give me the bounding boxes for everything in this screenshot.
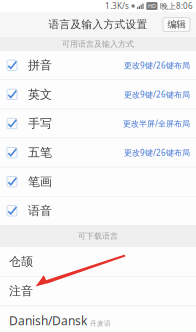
- button[interactable]: 编辑: [163, 17, 190, 31]
- button[interactable]: 仓颉: [0, 247, 196, 276]
- button[interactable]: 英文: [0, 80, 196, 109]
- button[interactable]: 手写: [0, 109, 196, 138]
- staticText: 注音: [9, 284, 33, 298]
- staticText: 拼音: [28, 58, 52, 73]
- button[interactable]: Danish/Dansk: [0, 306, 196, 332]
- staticText: 仓颉: [9, 254, 33, 269]
- staticText: 语言及输入方式设置: [48, 18, 147, 31]
- staticText: 更改9键/26键布局: [124, 147, 190, 158]
- button[interactable]: 拼音: [0, 51, 196, 80]
- staticText: 1.3K/s: [105, 1, 129, 11]
- staticText: 更改9键/26键布局: [124, 89, 190, 100]
- button[interactable]: 注音: [0, 277, 196, 306]
- staticText: 英文: [28, 87, 52, 102]
- staticText: 更改9键/26键布局: [124, 60, 190, 71]
- staticText: 语音: [28, 203, 52, 218]
- staticText: 丹麦语: [90, 319, 111, 328]
- staticText: 编辑: [167, 19, 185, 30]
- button[interactable]: 笔画: [0, 167, 196, 196]
- button[interactable]: 语音: [0, 196, 196, 225]
- staticText: 可用语言及输入方式: [62, 39, 134, 49]
- staticText: 五笔: [28, 145, 52, 160]
- staticText: 晚上8:06: [160, 1, 193, 11]
- staticText: 更改半屏/全屏布局: [123, 118, 190, 129]
- staticText: 笔画: [28, 174, 52, 189]
- staticText: HD: [148, 2, 156, 10]
- button[interactable]: 五笔: [0, 138, 196, 167]
- staticText: 手写: [28, 116, 52, 131]
- staticText: 可下载语言: [78, 231, 118, 241]
- staticText: Danish/Dansk: [9, 313, 87, 328]
